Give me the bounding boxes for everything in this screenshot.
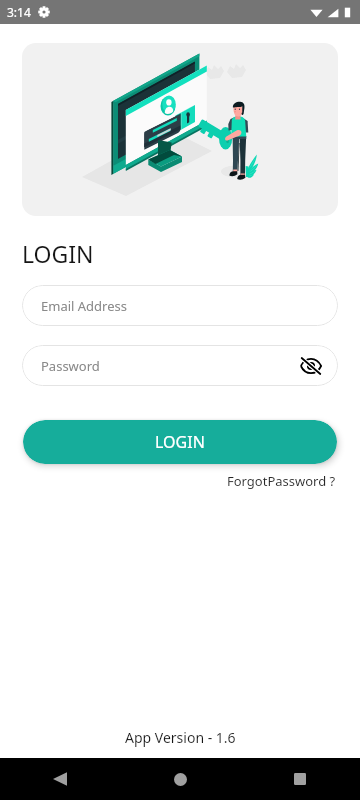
staticText: Password — [41, 357, 100, 375]
button[interactable]: LOGIN — [23, 420, 337, 464]
button[interactable]: Recents — [240, 758, 360, 800]
button[interactable]: ForgotPassword ? — [227, 470, 360, 492]
button[interactable]: Back — [0, 758, 120, 800]
staticText: 3:14 — [7, 4, 31, 20]
staticText: ForgotPassword ? — [227, 472, 336, 490]
button[interactable]: Toggle password visibility — [300, 355, 322, 377]
staticText: LOGIN — [22, 238, 94, 269]
button[interactable]: Email Address — [22, 285, 338, 326]
button[interactable]: Password — [22, 345, 338, 386]
staticText: App Version - 1.6 — [125, 728, 236, 747]
button[interactable]: Home — [120, 758, 240, 800]
staticText: LOGIN — [155, 431, 205, 453]
staticText: Email Address — [41, 297, 127, 315]
